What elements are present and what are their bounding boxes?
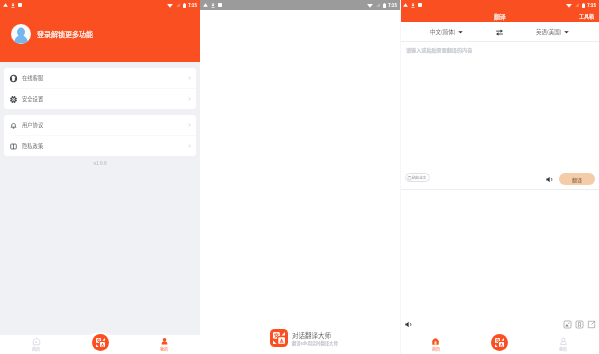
button[interactable]: 首页 [0, 335, 72, 354]
staticText: 我的 [559, 346, 567, 352]
button[interactable]: 翻译 [559, 173, 595, 185]
button[interactable]: Save image [564, 321, 571, 328]
staticText: 登录解锁更多功能 [37, 29, 93, 39]
button[interactable]: Share [588, 321, 595, 328]
button[interactable]: 粘贴全文 [405, 173, 430, 182]
staticText: 用户协议 [22, 121, 44, 129]
staticText: 中文(简体) [430, 28, 456, 36]
button[interactable]: 用户协议 [4, 115, 196, 135]
button[interactable]: Translate [491, 334, 508, 351]
button[interactable]: 英语(美国) [506, 22, 599, 41]
staticText: 7:15 [188, 2, 197, 9]
staticText: 在线客服 [22, 74, 44, 82]
staticText: 翻译 [572, 176, 583, 183]
staticText: v1.0.0 [0, 159, 200, 166]
button[interactable]: 我的 [527, 335, 599, 354]
staticText: 翻译sdk用实时翻译大师 [292, 340, 338, 346]
staticText: 7:15 [587, 2, 596, 9]
button[interactable]: Bookmark [576, 321, 583, 328]
staticText: 隐私政策 [22, 142, 44, 150]
staticText: 我的 [160, 346, 168, 352]
button[interactable]: 工具箱 [576, 10, 599, 21]
staticText: 工具箱 [579, 12, 595, 19]
button[interactable]: Translate [92, 334, 109, 351]
staticText: 请输入或粘贴需要翻译的内容 [406, 46, 473, 53]
staticText: 粘贴全文 [412, 175, 427, 180]
button[interactable]: 隐私政策 [4, 136, 196, 156]
button[interactable]: 我的 [128, 335, 200, 354]
staticText: 翻译 [494, 12, 506, 20]
button[interactable]: Speak input [546, 176, 553, 183]
button[interactable]: 安全设置 [4, 89, 196, 109]
staticText: 7:15 [388, 2, 397, 9]
staticText: 英语(美国) [536, 28, 562, 36]
button[interactable]: 首页 [400, 335, 471, 354]
staticText: 首页 [32, 346, 40, 352]
staticText: 首页 [432, 346, 440, 352]
button[interactable]: Swap languages [492, 25, 506, 39]
staticText: 对话翻译大师 [292, 330, 331, 339]
staticText: 安全设置 [22, 95, 44, 103]
button[interactable]: 中文(简体) [400, 22, 492, 41]
button[interactable]: 在线客服 [4, 68, 196, 88]
button[interactable]: Speak result [405, 321, 412, 328]
